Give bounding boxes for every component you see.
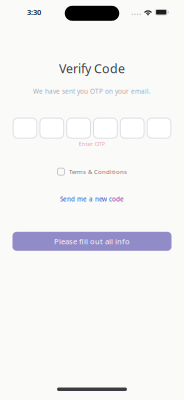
button[interactable]: Terms & Conditions <box>57 168 127 176</box>
staticText: Enter OTP <box>78 140 105 148</box>
staticText: Please fill out all info <box>54 236 130 246</box>
staticText: We have sent you OTP on your email. <box>33 87 151 96</box>
staticText: Verify Code <box>59 60 125 77</box>
staticText: Send me a new code <box>60 195 124 203</box>
staticText: 3:30 <box>27 7 41 17</box>
button[interactable]: Send me a new code <box>60 195 124 203</box>
button[interactable]: Please fill out all info <box>12 232 171 251</box>
staticText: Terms & Conditions <box>69 168 127 176</box>
